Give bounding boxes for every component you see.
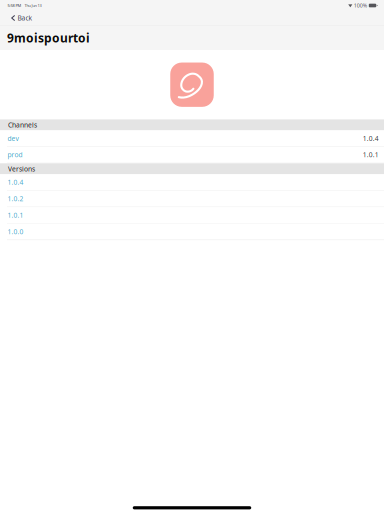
button[interactable]: 1.0.2 xyxy=(0,191,384,207)
staticText: 100% xyxy=(354,2,367,9)
staticText: 9moispourtoi xyxy=(7,30,90,46)
staticText: 1.0.1 xyxy=(363,150,379,159)
staticText: 1.0.4 xyxy=(8,178,24,187)
button[interactable]: 1.0.4 xyxy=(0,174,384,191)
staticText: 1.0.0 xyxy=(8,227,24,236)
staticText: Versions xyxy=(8,164,35,173)
button[interactable]: dev xyxy=(0,130,384,147)
staticText: 1.0.2 xyxy=(8,194,24,203)
staticText: Thu Jun 13 xyxy=(25,3,42,8)
button[interactable]: 1.0.1 xyxy=(0,207,384,224)
staticText: prod xyxy=(8,150,23,159)
staticText: dev xyxy=(8,134,19,143)
staticText: 1.0.1 xyxy=(8,211,24,220)
button[interactable]: prod xyxy=(0,147,384,163)
button[interactable]: Back xyxy=(0,11,39,25)
button[interactable]: 1.0.0 xyxy=(0,224,384,240)
staticText: 1.0.4 xyxy=(363,134,379,143)
staticText: 5:58 PM xyxy=(7,3,21,8)
staticText: Channels xyxy=(8,120,37,129)
staticText: Back xyxy=(18,14,33,22)
